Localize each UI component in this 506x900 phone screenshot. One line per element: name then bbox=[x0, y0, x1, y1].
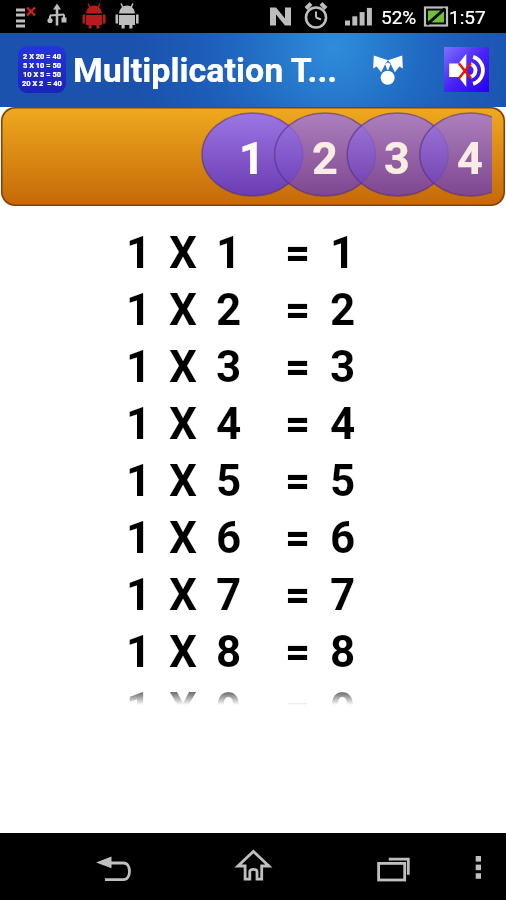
button[interactable]: 4 bbox=[419, 117, 492, 200]
staticText: X bbox=[169, 683, 197, 735]
staticText: 4 bbox=[457, 132, 483, 185]
staticText: 5 bbox=[216, 455, 242, 507]
button[interactable]: Home bbox=[183, 833, 324, 900]
staticText: 1 bbox=[239, 132, 265, 185]
staticText: 1 bbox=[126, 683, 152, 735]
staticText: 8 bbox=[330, 626, 356, 678]
button[interactable]: 1 bbox=[0, 623, 506, 680]
staticText: 4 bbox=[216, 398, 242, 450]
staticText: 1 bbox=[126, 284, 152, 336]
staticText: X bbox=[169, 626, 197, 678]
staticText: 52% bbox=[381, 6, 417, 28]
staticText: 7 bbox=[216, 569, 242, 621]
staticText: = bbox=[285, 512, 311, 564]
staticText: 9 bbox=[216, 683, 242, 735]
staticText: X bbox=[169, 455, 197, 507]
staticText: X bbox=[169, 512, 197, 564]
staticText: = bbox=[285, 341, 311, 393]
button[interactable]: 1 bbox=[0, 509, 506, 566]
button[interactable]: Recent apps bbox=[324, 833, 459, 900]
staticText: 2 bbox=[312, 132, 338, 185]
staticText: 1 bbox=[126, 227, 152, 279]
staticText: 7 bbox=[330, 569, 356, 621]
staticText: 1:57 bbox=[449, 6, 486, 28]
button[interactable]: 3 bbox=[346, 117, 447, 200]
button[interactable]: 1 bbox=[0, 452, 506, 509]
staticText: 2 bbox=[216, 284, 242, 336]
staticText: X bbox=[169, 398, 197, 450]
staticText: 1 bbox=[126, 341, 152, 393]
staticText: = bbox=[285, 227, 311, 279]
staticText: = bbox=[285, 284, 311, 336]
button[interactable]: Mute sound bbox=[444, 47, 489, 92]
button[interactable]: 1 bbox=[201, 117, 302, 200]
staticText: = bbox=[285, 626, 311, 678]
staticText: 4 bbox=[330, 398, 356, 450]
button[interactable]: More options bbox=[459, 833, 506, 900]
staticText: Multiplication T... bbox=[73, 50, 338, 90]
button[interactable]: 1 bbox=[0, 395, 506, 452]
button[interactable]: 1 bbox=[0, 566, 506, 623]
staticText: 1 bbox=[126, 569, 152, 621]
staticText: 8 bbox=[216, 626, 242, 678]
staticText: X bbox=[169, 284, 197, 336]
button[interactable]: Back bbox=[0, 833, 183, 900]
staticText: 9 bbox=[330, 683, 356, 735]
button[interactable]: 1 bbox=[0, 281, 506, 338]
staticText: X bbox=[169, 341, 197, 393]
button[interactable]: 1 bbox=[0, 680, 506, 737]
button[interactable]: 2 bbox=[274, 117, 375, 200]
staticText: = bbox=[285, 398, 311, 450]
staticText: 3 bbox=[216, 341, 242, 393]
staticText: 1 bbox=[126, 455, 152, 507]
staticText: 2 X 20 = 40 bbox=[23, 52, 62, 61]
button[interactable]: Share bbox=[364, 46, 412, 94]
staticText: 1 bbox=[330, 227, 356, 279]
staticText: 3 bbox=[330, 341, 356, 393]
button[interactable]: 1 bbox=[0, 224, 506, 281]
staticText: 6 bbox=[216, 512, 242, 564]
staticText: 1 bbox=[216, 227, 242, 279]
staticText: 10 X 5 = 50 bbox=[23, 70, 62, 79]
staticText: 5 bbox=[330, 455, 356, 507]
staticText: 1 bbox=[126, 626, 152, 678]
staticText: 6 bbox=[330, 512, 356, 564]
staticText: 1 bbox=[126, 512, 152, 564]
staticText: = bbox=[285, 569, 311, 621]
staticText: 20 X 2 = 40 bbox=[22, 79, 62, 88]
button[interactable]: 1 bbox=[0, 338, 506, 395]
staticText: X bbox=[169, 569, 197, 621]
staticText: 2 bbox=[330, 284, 356, 336]
staticText: 1 bbox=[126, 398, 152, 450]
staticText: 3 bbox=[384, 132, 410, 185]
staticText: X bbox=[169, 227, 197, 279]
staticText: 5 X 10 = 50 bbox=[23, 61, 62, 70]
staticText: = bbox=[285, 455, 311, 507]
